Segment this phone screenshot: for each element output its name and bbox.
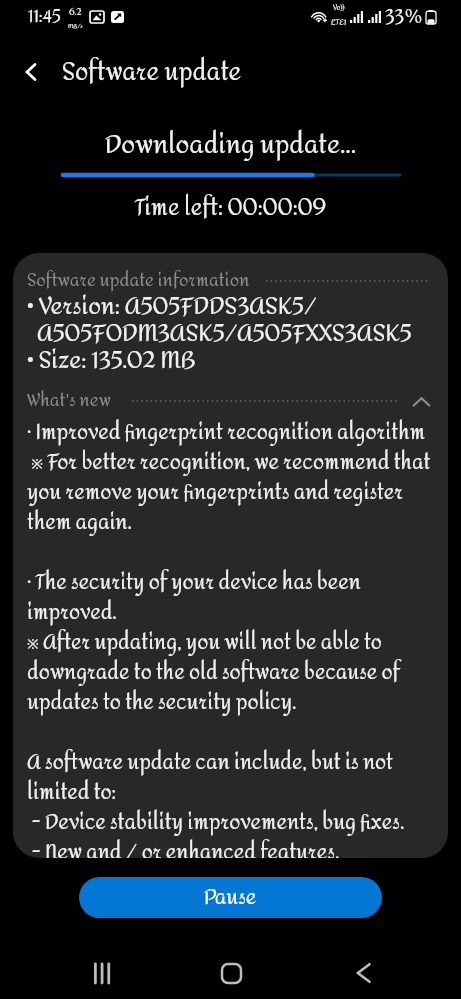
staticText: 33% <box>385 0 423 33</box>
staticText: LTE1 <box>331 15 347 31</box>
staticText: you remove your fingerprints and registe… <box>27 473 404 512</box>
staticText: downgrade to the old software because of <box>27 653 400 692</box>
staticText: improved. <box>27 593 117 632</box>
button[interactable]: Recents <box>78 949 126 997</box>
staticText: limited to: <box>27 773 116 812</box>
button[interactable]: Pause <box>79 877 382 918</box>
button[interactable]: Collapse <box>409 389 433 413</box>
staticText: · Improved fingerprint recognition algor… <box>27 413 426 452</box>
staticText: Downloading update... <box>0 121 461 170</box>
staticText: 6.2 <box>69 3 82 20</box>
button[interactable]: Home <box>207 949 255 997</box>
staticText: ※ After updating, you will not be able t… <box>27 623 382 662</box>
staticText: • Size: 135.02 MB <box>27 338 196 383</box>
staticText: MB/s <box>68 20 83 32</box>
staticText: · The security of your device has been <box>27 563 361 602</box>
staticText: What's new <box>27 384 111 417</box>
staticText: them again. <box>27 503 132 542</box>
button[interactable]: Back <box>339 949 387 997</box>
staticText: • Version: A505FDDS3ASK5/ <box>27 284 318 329</box>
staticText: Software update information <box>27 264 250 297</box>
staticText: - Device stability improvements, bug fix… <box>27 803 405 842</box>
staticText: Time left: 00:00:09 <box>0 187 461 230</box>
staticText: A505FODM3ASK5/A505FXXS3ASK5 <box>27 311 412 356</box>
staticText: Pause <box>204 878 257 917</box>
staticText: Vo)) <box>333 1 345 15</box>
staticText: Software update <box>62 49 242 96</box>
staticText: A software update can include, but is no… <box>27 743 393 782</box>
staticText: ※ For better recognition, we recommend t… <box>27 443 431 482</box>
button[interactable]: Back <box>7 48 55 96</box>
staticText: updates to the security policy. <box>27 683 297 722</box>
staticText: - New and / or enhanced features. <box>27 833 340 858</box>
staticText: 11:45 <box>28 0 61 33</box>
